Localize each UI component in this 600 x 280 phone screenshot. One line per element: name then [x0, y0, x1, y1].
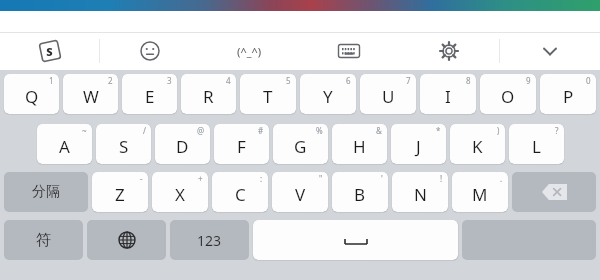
staticText: G [294, 135, 307, 158]
staticText: S [46, 44, 53, 59]
staticText: . [500, 173, 503, 184]
staticText: H [353, 135, 366, 158]
staticText: : [260, 173, 263, 184]
staticText: 9 [526, 75, 531, 86]
staticText: K [472, 135, 483, 158]
staticText: B [354, 183, 366, 206]
staticText: Z [115, 183, 125, 206]
button[interactable]: / [96, 124, 151, 164]
button[interactable]: ~ [37, 124, 92, 164]
button[interactable]: 7 [360, 74, 416, 114]
button[interactable]: Switch language [87, 220, 166, 260]
button[interactable]: - [92, 172, 148, 212]
button[interactable]: 0 [540, 74, 596, 114]
button[interactable]: Kaomoji [199, 32, 299, 70]
button[interactable]: Hide keyboard [500, 32, 600, 70]
staticText: 8 [466, 75, 471, 86]
button[interactable]: Space [253, 220, 458, 260]
button[interactable]: " [272, 172, 328, 212]
button[interactable]: ? [509, 124, 564, 164]
button[interactable]: * [391, 124, 446, 164]
staticText: 7 [406, 75, 411, 86]
staticText: @ [197, 125, 205, 136]
button[interactable]: 符 [4, 220, 83, 260]
staticText: (^_^) [237, 44, 262, 59]
staticText: J [416, 135, 421, 158]
button[interactable]: Keyboard layout [299, 32, 399, 70]
staticText: R [203, 85, 214, 108]
staticText: / [143, 125, 146, 136]
button[interactable]: 8 [420, 74, 476, 114]
button[interactable]: 4 [181, 74, 236, 114]
button[interactable]: ) [450, 124, 505, 164]
staticText: W [83, 85, 99, 108]
staticText: S [119, 135, 129, 158]
button[interactable]: @ [155, 124, 210, 164]
staticText: ! [440, 173, 443, 184]
staticText: ) [497, 125, 500, 136]
staticText: % [316, 125, 323, 136]
button[interactable]: Settings [399, 32, 499, 70]
staticText: L [532, 135, 541, 158]
button[interactable]: : [212, 172, 268, 212]
staticText: 1 [49, 75, 54, 86]
staticText: I [445, 85, 451, 108]
staticText: 符 [36, 231, 51, 250]
button[interactable]: Emoji [100, 32, 199, 70]
staticText: M [472, 183, 488, 206]
button[interactable]: + [152, 172, 208, 212]
staticText: 123 [197, 231, 222, 250]
staticText: " [319, 173, 323, 184]
button[interactable]: 1 [4, 74, 59, 114]
button[interactable]: 123 [170, 220, 249, 260]
staticText: - [140, 173, 143, 184]
button[interactable]: # [214, 124, 269, 164]
button[interactable]: 2 [63, 74, 118, 114]
staticText: & [376, 125, 382, 136]
button[interactable]: 9 [480, 74, 536, 114]
staticText: X [175, 183, 185, 206]
button[interactable]: Sogou input [0, 32, 99, 70]
staticText: ~ [82, 125, 87, 136]
staticText: V [295, 183, 306, 206]
staticText: U [382, 85, 395, 108]
button[interactable]: 分隔 [4, 172, 88, 212]
button[interactable]: 6 [300, 74, 356, 114]
staticText: D [176, 135, 189, 158]
staticText: + [198, 173, 203, 184]
staticText: ? [555, 125, 559, 136]
button[interactable]: 5 [240, 74, 296, 114]
staticText: C [235, 183, 246, 206]
staticText: # [258, 125, 264, 136]
staticText: 5 [286, 75, 291, 86]
staticText: Q [25, 85, 39, 108]
staticText: 分隔 [32, 183, 60, 201]
button[interactable]: 3 [122, 74, 177, 114]
staticText: 6 [346, 75, 351, 86]
button[interactable]: Backspace [512, 172, 596, 212]
staticText: 4 [226, 75, 231, 86]
staticText: ' [381, 173, 383, 184]
staticText: 0 [586, 75, 591, 86]
button[interactable]: ' [332, 172, 388, 212]
button[interactable]: % [273, 124, 328, 164]
button[interactable]: ! [392, 172, 448, 212]
staticText: Y [323, 85, 333, 108]
staticText: O [501, 85, 515, 108]
staticText: 3 [167, 75, 172, 86]
staticText: 2 [108, 75, 113, 86]
button[interactable]: . [452, 172, 508, 212]
staticText: F [237, 135, 246, 158]
staticText: N [414, 183, 427, 206]
staticText: * [436, 125, 441, 136]
staticText: P [563, 85, 574, 108]
button[interactable]: & [332, 124, 387, 164]
staticText: A [59, 135, 70, 158]
staticText: T [263, 85, 273, 108]
staticText: E [145, 85, 155, 108]
